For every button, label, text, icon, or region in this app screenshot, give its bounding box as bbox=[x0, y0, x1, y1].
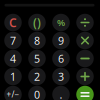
button[interactable]: C bbox=[4, 14, 22, 31]
staticText: +/− bbox=[6, 89, 19, 100]
button[interactable]: 7 bbox=[4, 32, 22, 49]
button[interactable]: () bbox=[28, 14, 46, 31]
button[interactable]: 4 bbox=[4, 50, 22, 67]
button[interactable]: . bbox=[52, 86, 70, 100]
staticText: C bbox=[9, 14, 17, 30]
button[interactable]: Equals bbox=[76, 86, 94, 100]
button[interactable]: 6 bbox=[52, 50, 70, 67]
button[interactable]: 1 bbox=[4, 68, 22, 85]
button[interactable]: Multiply bbox=[76, 32, 94, 49]
button[interactable]: 9 bbox=[52, 32, 70, 49]
staticText: 1 bbox=[10, 69, 16, 84]
staticText: % bbox=[57, 16, 65, 29]
button[interactable]: Subtract bbox=[76, 50, 94, 67]
button[interactable]: 5 bbox=[28, 50, 46, 67]
staticText: 6 bbox=[58, 51, 64, 66]
staticText: 0 bbox=[34, 87, 40, 100]
button[interactable]: % bbox=[52, 14, 70, 31]
button[interactable]: 3 bbox=[52, 68, 70, 85]
button[interactable]: +/− bbox=[4, 86, 22, 100]
staticText: 5 bbox=[34, 51, 40, 66]
staticText: 7 bbox=[10, 33, 16, 48]
staticText: () bbox=[33, 14, 41, 30]
staticText: 3 bbox=[58, 69, 64, 84]
staticText: 9 bbox=[58, 33, 64, 48]
button[interactable]: 8 bbox=[28, 32, 46, 49]
button[interactable]: Divide bbox=[76, 14, 94, 31]
staticText: 8 bbox=[34, 33, 40, 48]
button[interactable]: Add bbox=[76, 68, 94, 85]
button[interactable]: 2 bbox=[28, 68, 46, 85]
button[interactable]: 0 bbox=[28, 86, 46, 100]
staticText: 4 bbox=[10, 51, 16, 66]
staticText: . bbox=[59, 87, 62, 100]
staticText: 2 bbox=[34, 69, 40, 84]
